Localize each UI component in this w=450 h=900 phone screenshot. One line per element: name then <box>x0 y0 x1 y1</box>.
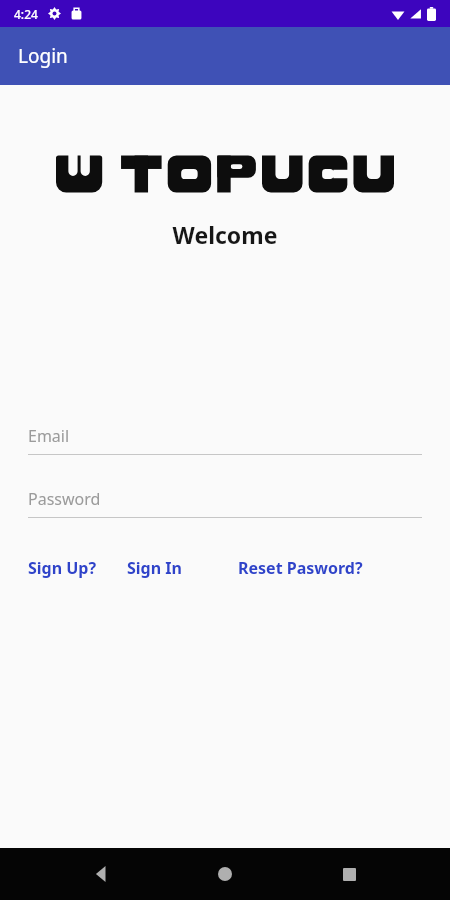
staticText: Password <box>28 488 101 510</box>
staticText: Welcome <box>0 219 450 250</box>
staticText: Sign Up? <box>28 557 97 579</box>
staticText: Reset Pasword? <box>238 557 363 579</box>
button[interactable]: Reset Pasword? <box>238 554 363 582</box>
button[interactable]: Email <box>28 425 422 455</box>
button[interactable]: Home <box>203 852 247 896</box>
button[interactable]: Sign In <box>127 554 182 582</box>
staticText: Email <box>28 425 70 447</box>
staticText: Sign In <box>127 557 182 579</box>
button[interactable]: Recent apps <box>327 852 371 896</box>
staticText: 4:24 <box>14 6 38 22</box>
staticText: Login <box>18 43 68 69</box>
button[interactable]: Back <box>80 852 124 896</box>
button[interactable]: Sign Up? <box>28 554 97 582</box>
button[interactable]: Password <box>28 488 422 518</box>
